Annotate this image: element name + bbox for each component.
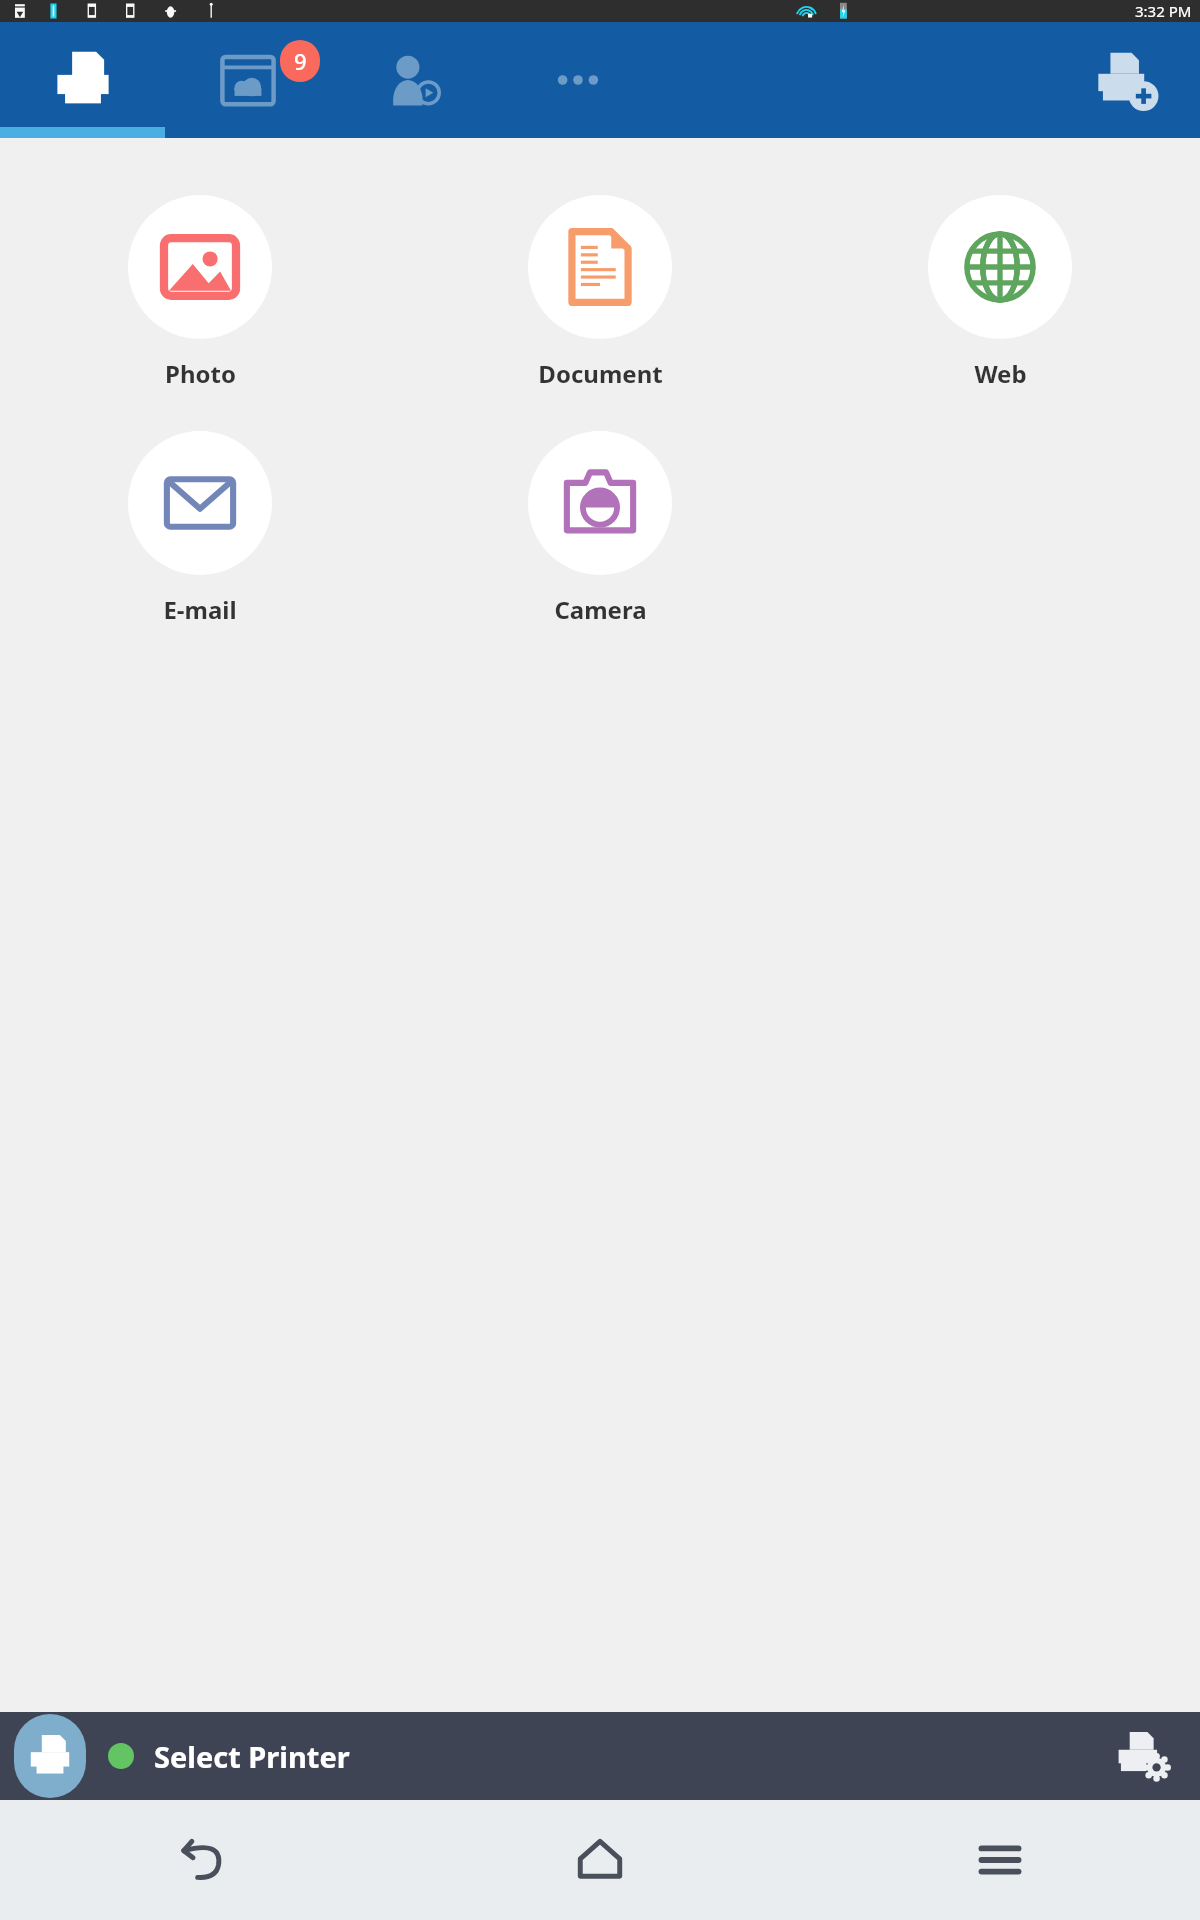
button[interactable]: Printer settings bbox=[1098, 1712, 1186, 1800]
button[interactable]: More bbox=[495, 22, 660, 138]
staticText: Select Printer bbox=[154, 1737, 350, 1776]
button[interactable]: Back bbox=[0, 1800, 400, 1920]
button[interactable]: Cloud, 9 items bbox=[165, 22, 330, 138]
button[interactable]: Transfer bbox=[330, 22, 495, 138]
staticText: Web bbox=[974, 357, 1027, 390]
button[interactable]: Print bbox=[0, 22, 165, 138]
button[interactable]: Document bbox=[400, 195, 800, 390]
staticText: Document bbox=[538, 357, 663, 390]
staticText: Camera bbox=[554, 593, 647, 626]
button[interactable]: Menu bbox=[800, 1800, 1200, 1920]
staticText: 3:32 PM bbox=[1135, 1, 1192, 21]
button[interactable]: Select Printer bbox=[0, 1712, 1200, 1800]
button[interactable]: E-mail bbox=[0, 431, 400, 626]
button[interactable]: Add printer bbox=[1050, 22, 1200, 138]
staticText: Photo bbox=[165, 357, 236, 390]
button[interactable]: Photo bbox=[0, 195, 400, 390]
button[interactable]: Home bbox=[400, 1800, 800, 1920]
button[interactable]: Web bbox=[800, 195, 1200, 390]
button[interactable]: Camera bbox=[400, 431, 800, 626]
staticText: E-mail bbox=[163, 593, 237, 626]
staticText: 9 bbox=[294, 46, 307, 76]
